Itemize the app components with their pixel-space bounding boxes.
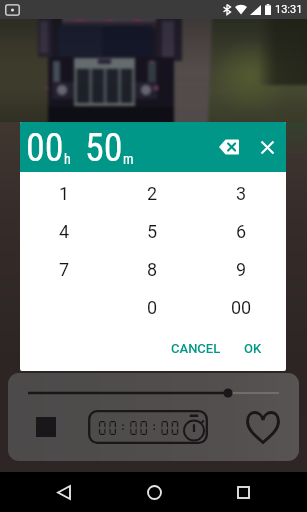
button[interactable]: 1 — [20, 174, 108, 212]
button[interactable]: Backspace — [209, 127, 249, 167]
staticText: 00 — [231, 297, 252, 318]
button[interactable]: 00 — [197, 288, 286, 326]
button[interactable]: 2 — [108, 174, 197, 212]
staticText: 00 — [26, 126, 64, 171]
button[interactable]: 8 — [108, 250, 197, 288]
button[interactable]: Seek — [8, 385, 299, 401]
staticText: m — [123, 151, 134, 167]
button[interactable]: CANCEL — [165, 335, 227, 362]
staticText: 13:31 — [275, 3, 303, 16]
button[interactable]: 4 — [20, 212, 108, 250]
staticText: h — [64, 151, 71, 167]
staticText: 4 — [59, 221, 70, 242]
staticText: 50 — [85, 126, 123, 171]
staticText: 00:00:00 — [97, 419, 181, 436]
other: Cast — [5, 4, 20, 16]
staticText: 6 — [236, 221, 247, 242]
staticText: 8 — [147, 259, 158, 280]
button[interactable]: 0 — [108, 288, 197, 326]
button[interactable]: Timecode — [88, 410, 208, 444]
button[interactable]: Home — [134, 472, 174, 512]
staticText: 2 — [147, 183, 158, 204]
staticText: 5 — [147, 221, 158, 242]
button[interactable]: Favorite — [239, 404, 287, 452]
button[interactable]: 5 — [108, 212, 197, 250]
staticText: 3 — [236, 183, 247, 204]
staticText: OK — [244, 341, 262, 356]
button[interactable]: Back — [44, 472, 84, 512]
staticText: 7 — [59, 259, 70, 280]
staticText: 0 — [147, 297, 158, 318]
button[interactable]: Stop — [24, 405, 68, 449]
button[interactable]: 9 — [197, 250, 286, 288]
staticText: 1 — [59, 183, 70, 204]
button[interactable]: 6 — [197, 212, 286, 250]
button[interactable]: OK — [238, 335, 268, 362]
button[interactable]: Close — [247, 127, 286, 167]
staticText: 9 — [236, 259, 247, 280]
staticText: CANCEL — [171, 341, 221, 356]
button[interactable]: Recents — [223, 472, 263, 512]
button[interactable]: 7 — [20, 250, 108, 288]
button[interactable]: 3 — [197, 174, 286, 212]
